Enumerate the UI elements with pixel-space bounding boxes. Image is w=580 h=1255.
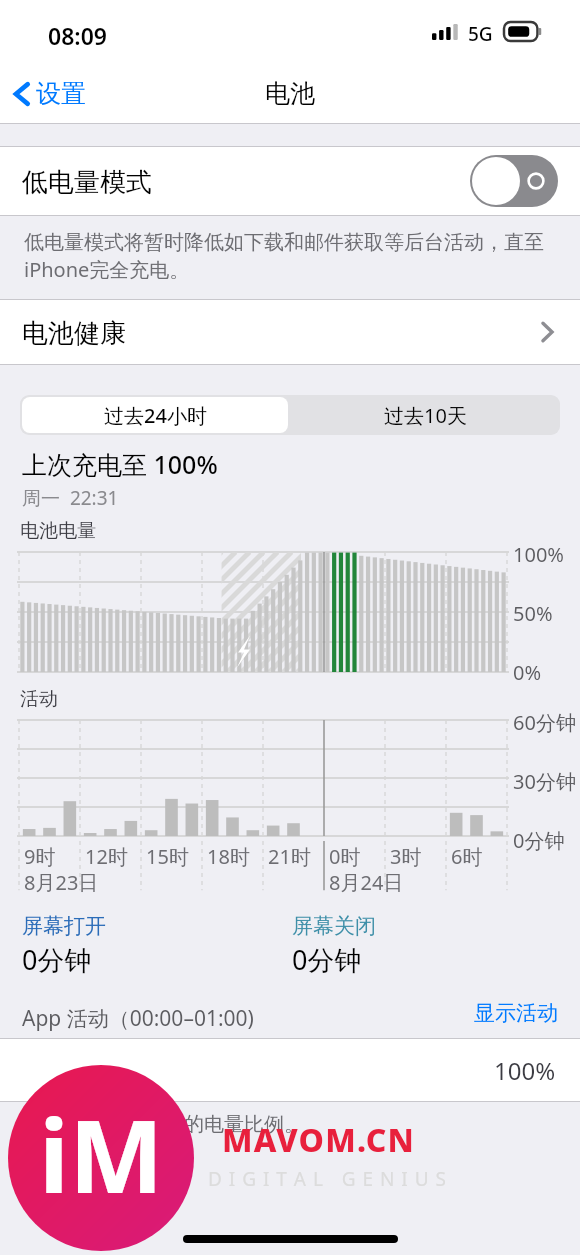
staticText: 08:09 [48,20,107,51]
staticText: 8月23日 [24,869,99,896]
staticText: D I G I T A L G E N I U S [208,1166,448,1192]
button[interactable]: 过去24小时 [22,397,288,433]
staticText: 18时 [207,843,250,870]
staticText: 电池健康 [22,317,126,350]
button[interactable]: 低电量模式开关 [470,155,558,207]
staticText: 60分钟 [513,709,576,736]
button[interactable]: 100% [0,1038,580,1102]
staticText: 上次充电至 100% [22,447,218,481]
staticText: 0时 [329,843,361,870]
staticText: 电池 [265,78,315,109]
button[interactable]: 设置 [0,72,96,115]
staticText: 周一 22:31 [22,485,119,511]
staticText: 15时 [146,843,189,870]
staticText: 过去10天 [384,402,467,429]
staticText: 0分钟 [22,941,92,978]
staticText: 100% [513,541,564,568]
staticText: iM [39,1086,164,1222]
staticText: 8月24日 [329,869,404,896]
button[interactable]: 显示活动 [466,1000,580,1026]
staticText: App 活动（00:00–01:00) [22,1004,254,1033]
staticText: 0分钟 [292,941,362,978]
staticText: 电池电量 [20,519,96,543]
staticText: 100% [494,1054,556,1087]
staticText: 过去24小时 [104,402,207,429]
staticText: 显示所选时间段内的电量比例。 [24,1112,304,1137]
staticText: 低电量模式将暂时降低如下载和邮件获取等后台活动，直至 iPhone完全充电。 [24,230,544,283]
button[interactable]: 电池健康 [0,299,580,365]
staticText: 30分钟 [513,768,576,795]
staticText: 低电量模式 [22,166,152,199]
staticText: 显示活动 [474,1000,558,1026]
staticText: 9时 [24,843,56,870]
staticText: 50% [513,600,553,627]
staticText: MAVOM.CN [222,1118,416,1162]
staticText: 设置 [36,78,86,109]
staticText: 12时 [85,843,128,870]
button[interactable]: 过去10天 [290,395,560,435]
staticText: 21时 [268,843,311,870]
staticText: 活动 [20,687,58,711]
staticText: 3时 [390,843,422,870]
staticText: 0分钟 [513,827,565,854]
staticText: 6时 [451,843,483,870]
staticText: 屏幕打开 [22,913,106,939]
staticText: 5G [468,21,493,47]
staticText: 0% [513,659,542,686]
staticText: 屏幕关闭 [292,913,376,939]
